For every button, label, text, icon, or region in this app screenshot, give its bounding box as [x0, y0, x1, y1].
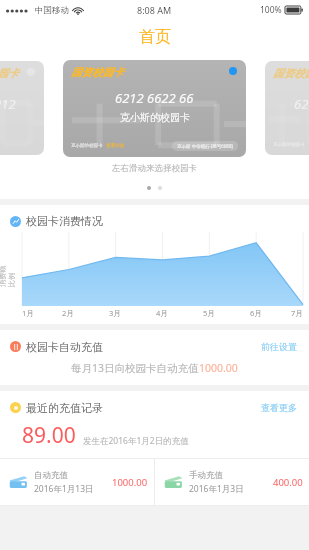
staticText: 国资校园卡 — [71, 66, 124, 79]
staticText: 克小斯的校园卡 — [71, 143, 103, 149]
staticText: 自动充值 — [34, 470, 68, 481]
other: Card — [9, 476, 28, 489]
staticText: 2016年1月3日 — [189, 483, 244, 495]
staticText: 5月 — [203, 308, 215, 318]
button[interactable]: 国资校园卡 — [63, 60, 246, 157]
staticText: 前往设置 — [261, 341, 297, 352]
staticText: 左右滑动来选择校园卡 — [112, 163, 197, 174]
staticText: 校园卡消费情况 — [26, 214, 103, 228]
button[interactable]: 前往设置 — [259, 339, 299, 354]
staticText: 100% — [260, 4, 282, 16]
staticText: 2016年1月13日 — [34, 483, 94, 495]
staticText: 1月 — [22, 308, 34, 318]
staticText: 校园卡自动充值 — [26, 340, 103, 354]
staticText: 克小斯的校园卡 — [273, 142, 305, 148]
staticText: 2月 — [62, 308, 74, 318]
staticText: 8:08 AM — [137, 4, 172, 16]
staticText: 查看详情 — [106, 143, 124, 149]
staticText: 6月 — [250, 308, 262, 318]
staticText: 6212 6622 66 — [115, 89, 194, 107]
button[interactable]: 国资校园卡 — [0, 61, 44, 155]
button[interactable]: 查看更多 — [259, 400, 299, 415]
staticText: 克小斯的校园卡 — [120, 111, 190, 124]
staticText: 6212 — [294, 95, 309, 113]
staticText: 3月 — [109, 308, 121, 318]
staticText: 首页 — [139, 27, 171, 47]
staticText: 4月 — [156, 308, 168, 318]
staticText: 89.00 — [22, 421, 76, 450]
staticText: 1000.00 — [199, 361, 238, 375]
button[interactable]: Card — [155, 459, 309, 505]
staticText: 7月 — [291, 308, 303, 318]
staticText: 6212 — [0, 95, 16, 113]
staticText: 1000.00 — [112, 476, 148, 489]
staticText: 中国移动 — [35, 5, 69, 16]
button[interactable]: Card — [0, 459, 154, 505]
staticText: 查看更多 — [261, 402, 297, 413]
staticText: 发生在2016年1月2日的充值 — [83, 435, 189, 447]
staticText: 国资校园卡 — [0, 67, 19, 80]
staticText: 最近的充值记录 — [26, 401, 103, 415]
other: Card — [164, 476, 183, 489]
button[interactable]: 国资校园卡 — [265, 61, 309, 155]
staticText: 手动充值 — [189, 470, 223, 481]
staticText: 国资校园卡 — [273, 67, 309, 80]
staticText: 消费额比例 — [0, 265, 16, 287]
staticText: 每月13日向校园卡自动充值 — [71, 361, 199, 375]
staticText: 克小斯 中信银行 (尾号6688) — [177, 143, 233, 149]
staticText: 400.00 — [273, 476, 303, 489]
